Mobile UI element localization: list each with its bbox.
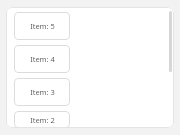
button[interactable]: Item: 5 [14, 12, 70, 40]
button[interactable]: Item: 2 [14, 111, 70, 128]
button[interactable]: Item: 3 [14, 78, 70, 106]
staticText: Item: 3 [30, 87, 55, 97]
button[interactable]: Item: 4 [14, 45, 70, 73]
staticText: Item: 2 [30, 115, 55, 125]
staticText: Item: 4 [30, 54, 55, 64]
staticText: Item: 5 [30, 21, 55, 31]
